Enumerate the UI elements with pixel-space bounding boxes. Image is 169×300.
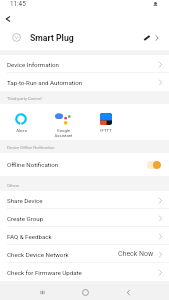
- button[interactable]: Back: [113, 284, 143, 300]
- staticText: Alexa: [16, 128, 27, 133]
- staticText: Smart Plug: [30, 33, 74, 43]
- button[interactable]: Share Device: [0, 191, 169, 209]
- button[interactable]: Home: [70, 284, 100, 300]
- staticText: Google Assistant: [54, 128, 73, 138]
- button[interactable]: Check Device Network: [0, 245, 169, 263]
- staticText: Third-party Control: [7, 96, 42, 101]
- staticText: Check for Firmware Update: [7, 269, 82, 276]
- button[interactable]: Edit device name: [143, 30, 161, 46]
- staticText: Share Device: [7, 197, 43, 204]
- button[interactable]: Alexa: [1, 113, 41, 133]
- button[interactable]: Device Information: [0, 55, 169, 73]
- staticText: FAQ & Feedback: [7, 233, 52, 240]
- staticText: Offline Notification: [7, 161, 59, 168]
- button[interactable]: Offline Notification: [0, 153, 169, 176]
- staticText: 11:45: [10, 0, 26, 7]
- staticText: Others: [7, 183, 20, 188]
- button[interactable]: Tap-to-Run and Automation: [0, 73, 169, 91]
- button[interactable]: Create Group: [0, 209, 169, 227]
- staticText: Create Group: [7, 215, 44, 222]
- button[interactable]: Check for Firmware Update: [0, 263, 169, 281]
- button[interactable]: Recents: [27, 284, 57, 300]
- staticText: Device Offline Notification: [7, 145, 55, 150]
- staticText: IFTTT: [100, 128, 112, 133]
- button[interactable]: IFTTT: [86, 113, 126, 133]
- button[interactable]: Back: [2, 13, 14, 25]
- staticText: Device Information: [7, 61, 60, 68]
- button[interactable]: FAQ & Feedback: [0, 227, 169, 245]
- staticText: Check Now: [118, 250, 154, 258]
- staticText: Check Device Network: [7, 251, 69, 258]
- staticText: Tap-to-Run and Automation: [7, 79, 83, 86]
- button[interactable]: Google Assistant: [43, 113, 83, 138]
